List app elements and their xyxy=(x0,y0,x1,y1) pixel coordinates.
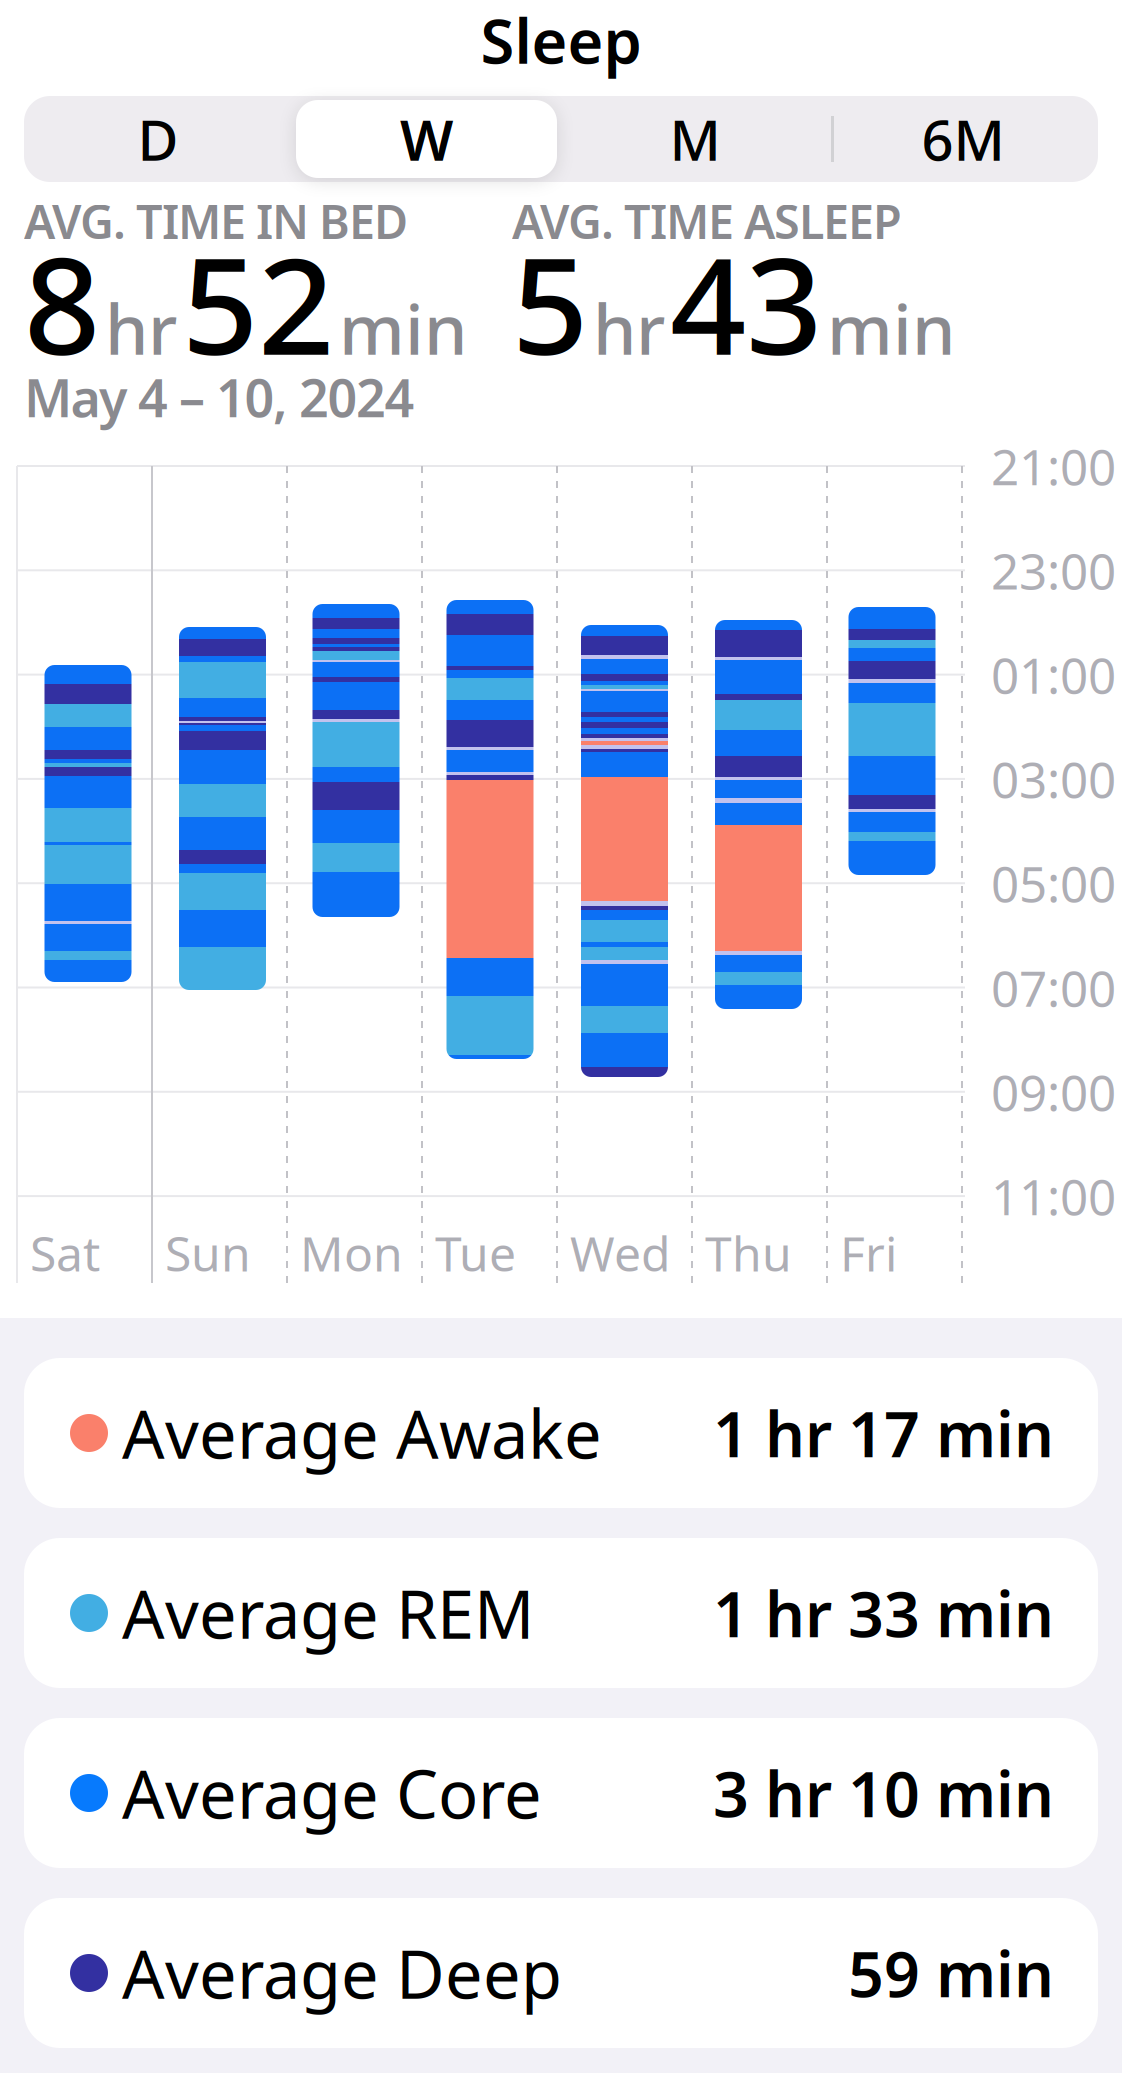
staticText: M xyxy=(669,102,720,176)
staticText: Thu xyxy=(705,1221,792,1285)
staticText: Average Awake xyxy=(122,1389,602,1477)
staticText: Sat xyxy=(30,1221,100,1285)
staticText: 52 xyxy=(182,214,334,392)
staticText: 1 hr 33 min xyxy=(713,1571,1054,1655)
staticText: Fri xyxy=(840,1221,897,1285)
staticText: 1 hr 17 min xyxy=(713,1391,1054,1475)
button[interactable]: W xyxy=(296,100,557,178)
button[interactable]: D xyxy=(28,99,288,179)
staticText: D xyxy=(137,102,178,176)
staticText: 5 xyxy=(512,214,588,392)
staticText: hr xyxy=(105,282,177,374)
staticText: min xyxy=(827,282,955,374)
staticText: min xyxy=(339,282,467,374)
staticText: Tue xyxy=(435,1221,516,1285)
staticText: 6M xyxy=(921,102,1004,176)
button[interactable]: M xyxy=(565,99,825,179)
button[interactable]: 6M xyxy=(833,99,1093,179)
staticText: 05:00 xyxy=(991,850,1116,916)
staticText: 8 xyxy=(24,214,100,392)
staticText: Average Deep xyxy=(122,1929,562,2017)
staticText: 11:00 xyxy=(991,1163,1116,1229)
staticText: Average Core xyxy=(122,1749,542,1837)
staticText: AVG. TIME ASLEEP xyxy=(512,190,902,252)
staticText: 07:00 xyxy=(991,955,1116,1020)
staticText: Average REM xyxy=(122,1569,534,1657)
staticText: hr xyxy=(593,282,665,374)
staticText: 43 xyxy=(670,214,822,392)
staticText: 59 min xyxy=(848,1931,1054,2015)
staticText: 01:00 xyxy=(991,642,1116,707)
staticText: 3 hr 10 min xyxy=(713,1751,1054,1835)
staticText: Sleep xyxy=(480,0,641,81)
staticText: AVG. TIME IN BED xyxy=(24,190,408,252)
staticText: Wed xyxy=(570,1221,671,1285)
staticText: Mon xyxy=(300,1221,403,1285)
staticText: W xyxy=(400,102,453,176)
staticText: May 4 – 10, 2024 xyxy=(24,362,414,432)
staticText: 23:00 xyxy=(991,537,1116,603)
staticText: 09:00 xyxy=(991,1059,1116,1124)
staticText: 03:00 xyxy=(991,746,1116,812)
staticText: 21:00 xyxy=(991,433,1116,499)
staticText: Sun xyxy=(165,1221,251,1285)
